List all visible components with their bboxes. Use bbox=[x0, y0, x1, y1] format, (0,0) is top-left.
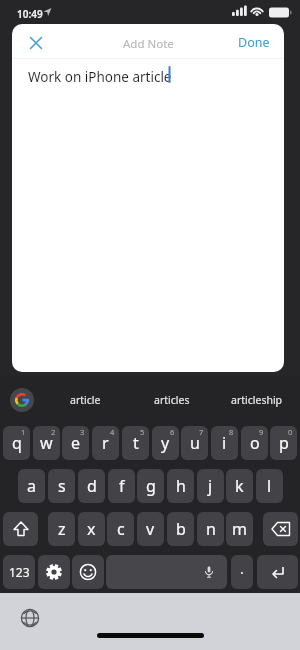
staticText: 123 bbox=[9, 564, 30, 580]
staticText: n bbox=[206, 518, 216, 540]
button[interactable]: r bbox=[92, 426, 119, 460]
button[interactable]: f bbox=[108, 469, 135, 503]
staticText: l bbox=[267, 475, 272, 497]
button[interactable]: Done bbox=[238, 34, 270, 51]
staticText: f bbox=[119, 475, 125, 497]
staticText: Done bbox=[238, 34, 270, 51]
staticText: y bbox=[161, 432, 170, 454]
button[interactable] bbox=[10, 388, 34, 412]
staticText: g bbox=[146, 475, 156, 497]
button[interactable]: y bbox=[152, 426, 179, 460]
button[interactable]: c bbox=[107, 512, 134, 546]
button[interactable]: articleship bbox=[217, 389, 297, 411]
staticText: 3 bbox=[80, 427, 85, 437]
button[interactable]: a bbox=[18, 469, 45, 503]
button[interactable]: v bbox=[137, 512, 164, 546]
button[interactable]: articles bbox=[132, 389, 212, 411]
staticText: . bbox=[240, 559, 244, 578]
button[interactable]: n bbox=[197, 512, 224, 546]
button[interactable]: x bbox=[78, 512, 105, 546]
button[interactable]: q bbox=[3, 426, 30, 460]
button[interactable]: i bbox=[211, 426, 238, 460]
button[interactable]: j bbox=[197, 469, 224, 503]
button[interactable]: . bbox=[231, 555, 253, 589]
button[interactable]: s bbox=[48, 469, 75, 503]
button[interactable]: article bbox=[45, 389, 125, 411]
staticText: 4 bbox=[110, 427, 115, 437]
button[interactable]: h bbox=[167, 469, 194, 503]
staticText: z bbox=[58, 518, 66, 540]
staticText: a bbox=[27, 475, 36, 497]
staticText: 5 bbox=[140, 427, 145, 437]
button[interactable]: t bbox=[122, 426, 149, 460]
staticText: e bbox=[71, 432, 81, 454]
button[interactable] bbox=[38, 555, 70, 589]
staticText: article bbox=[70, 393, 101, 407]
staticText: c bbox=[117, 518, 125, 540]
button[interactable]: z bbox=[48, 512, 75, 546]
button[interactable]: w bbox=[33, 426, 60, 460]
staticText: d bbox=[87, 475, 97, 497]
button[interactable] bbox=[72, 555, 104, 589]
staticText: b bbox=[176, 518, 186, 540]
button[interactable]: p bbox=[270, 426, 297, 460]
button[interactable]: d bbox=[78, 469, 105, 503]
staticText: w bbox=[40, 432, 53, 454]
staticText: r bbox=[102, 432, 109, 454]
staticText: i bbox=[222, 432, 227, 454]
button[interactable] bbox=[3, 512, 38, 546]
button[interactable] bbox=[257, 555, 298, 589]
staticText: j bbox=[208, 475, 213, 497]
staticText: h bbox=[176, 475, 186, 497]
staticText: Add Note bbox=[123, 36, 174, 52]
staticText: articles bbox=[154, 393, 190, 407]
staticText: x bbox=[87, 518, 96, 540]
staticText: 8 bbox=[229, 427, 234, 437]
staticText: q bbox=[12, 432, 22, 454]
staticText: u bbox=[190, 432, 200, 454]
staticText: articleship bbox=[231, 393, 283, 407]
staticText: 10:49 bbox=[17, 7, 43, 21]
staticText: s bbox=[58, 475, 66, 497]
button[interactable] bbox=[263, 512, 298, 546]
button[interactable]: 123 bbox=[3, 555, 35, 589]
button[interactable]: e bbox=[62, 426, 89, 460]
button[interactable] bbox=[106, 555, 227, 589]
button[interactable]: u bbox=[181, 426, 208, 460]
button[interactable]: b bbox=[167, 512, 194, 546]
button[interactable] bbox=[18, 606, 42, 630]
staticText: 7 bbox=[199, 427, 204, 437]
staticText: o bbox=[250, 432, 260, 454]
button[interactable]: o bbox=[241, 426, 268, 460]
staticText: m bbox=[232, 518, 247, 540]
button[interactable]: k bbox=[226, 469, 253, 503]
button[interactable]: g bbox=[137, 469, 164, 503]
staticText: 9 bbox=[259, 427, 264, 437]
staticText: 2 bbox=[51, 427, 56, 437]
staticText: t bbox=[133, 432, 139, 454]
staticText: 0 bbox=[288, 427, 293, 437]
staticText: k bbox=[235, 475, 244, 497]
button[interactable]: m bbox=[226, 512, 253, 546]
staticText: p bbox=[279, 432, 289, 454]
staticText: Work on iPhone article bbox=[28, 68, 172, 86]
staticText: v bbox=[146, 518, 155, 540]
button[interactable] bbox=[24, 31, 48, 55]
staticText: 6 bbox=[170, 427, 175, 437]
staticText: 1 bbox=[21, 427, 26, 437]
button[interactable]: l bbox=[256, 469, 283, 503]
